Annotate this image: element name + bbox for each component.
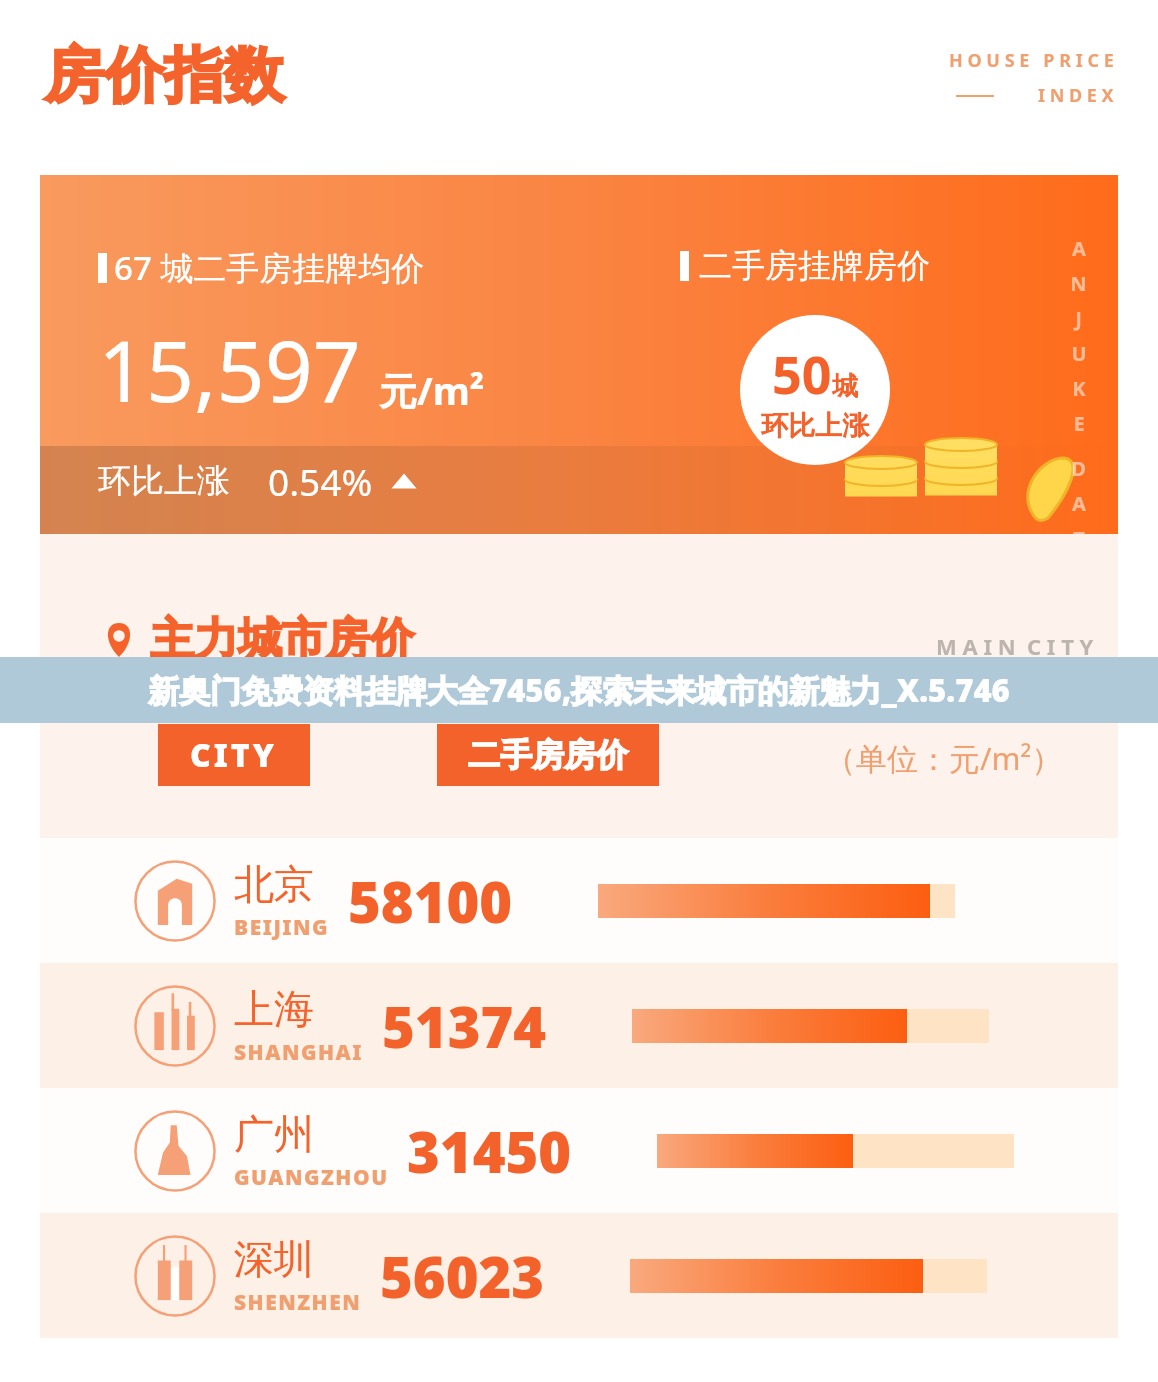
staticText: BEIJING xyxy=(234,913,330,942)
staticText: 50 xyxy=(772,338,832,409)
staticText: 二手房房价 xyxy=(468,735,628,775)
staticText: 58100 xyxy=(348,863,513,939)
staticText: 新奥门免费资料挂牌大全7456,探索未来城市的新魅力_X.5.746 xyxy=(148,669,1010,711)
button[interactable]: SHENZHEN landmark xyxy=(40,1213,1118,1338)
staticText: 上海 xyxy=(234,984,314,1034)
staticText: 15,597 xyxy=(98,312,361,426)
staticText: T xyxy=(1073,525,1085,552)
staticText: 广州 xyxy=(234,1109,314,1159)
staticText: 31450 xyxy=(407,1113,572,1189)
staticText: D xyxy=(1071,455,1086,482)
other: GUANGZHOU landmark xyxy=(132,1108,218,1194)
staticText: （单位：元/m²） xyxy=(825,737,1063,779)
button[interactable]: CITY xyxy=(158,724,310,786)
staticText: J xyxy=(1075,305,1082,332)
staticText: U xyxy=(1071,340,1087,367)
button[interactable]: SHANGHAI landmark xyxy=(40,963,1118,1088)
other: SHANGHAI landmark xyxy=(132,983,218,1069)
staticText: 元/m² xyxy=(379,364,485,416)
staticText: N xyxy=(1070,270,1087,297)
staticText: SHENZHEN xyxy=(234,1288,362,1317)
staticText: A xyxy=(1072,490,1086,517)
staticText: 环比上涨 xyxy=(98,460,230,502)
button[interactable]: BEIJING landmark xyxy=(40,838,1118,963)
staticText: 深圳 xyxy=(234,1234,314,1284)
staticText: 环比上涨 xyxy=(761,409,869,443)
staticText: 房价指数 xyxy=(44,38,284,114)
staticText: K xyxy=(1072,375,1086,402)
staticText: E xyxy=(1073,410,1085,437)
staticText: 0.54% xyxy=(268,456,373,506)
staticText: SHANGHAI xyxy=(234,1038,364,1067)
staticText: H O U S E P R I C E xyxy=(949,48,1114,73)
other: SHENZHEN landmark xyxy=(132,1233,218,1319)
staticText: 67 城二手房挂牌均价 xyxy=(114,245,425,290)
staticText: 56023 xyxy=(380,1238,545,1314)
staticText: 城 xyxy=(832,370,858,403)
staticText: M A I N C I T Y xyxy=(936,631,1094,661)
staticText: GUANGZHOU xyxy=(234,1163,389,1192)
staticText: A xyxy=(1072,235,1086,262)
staticText: 二手房挂牌房价 xyxy=(699,245,930,287)
staticText: 主力城市房价 xyxy=(150,612,414,667)
button[interactable]: GUANGZHOU landmark xyxy=(40,1088,1118,1213)
button[interactable]: 二手房房价 xyxy=(437,724,659,786)
staticText: 北京 xyxy=(234,859,314,909)
staticText: I N D E X xyxy=(1038,83,1114,108)
staticText: CITY xyxy=(190,733,278,777)
staticText: 51374 xyxy=(382,988,547,1064)
other: BEIJING landmark xyxy=(132,858,218,944)
